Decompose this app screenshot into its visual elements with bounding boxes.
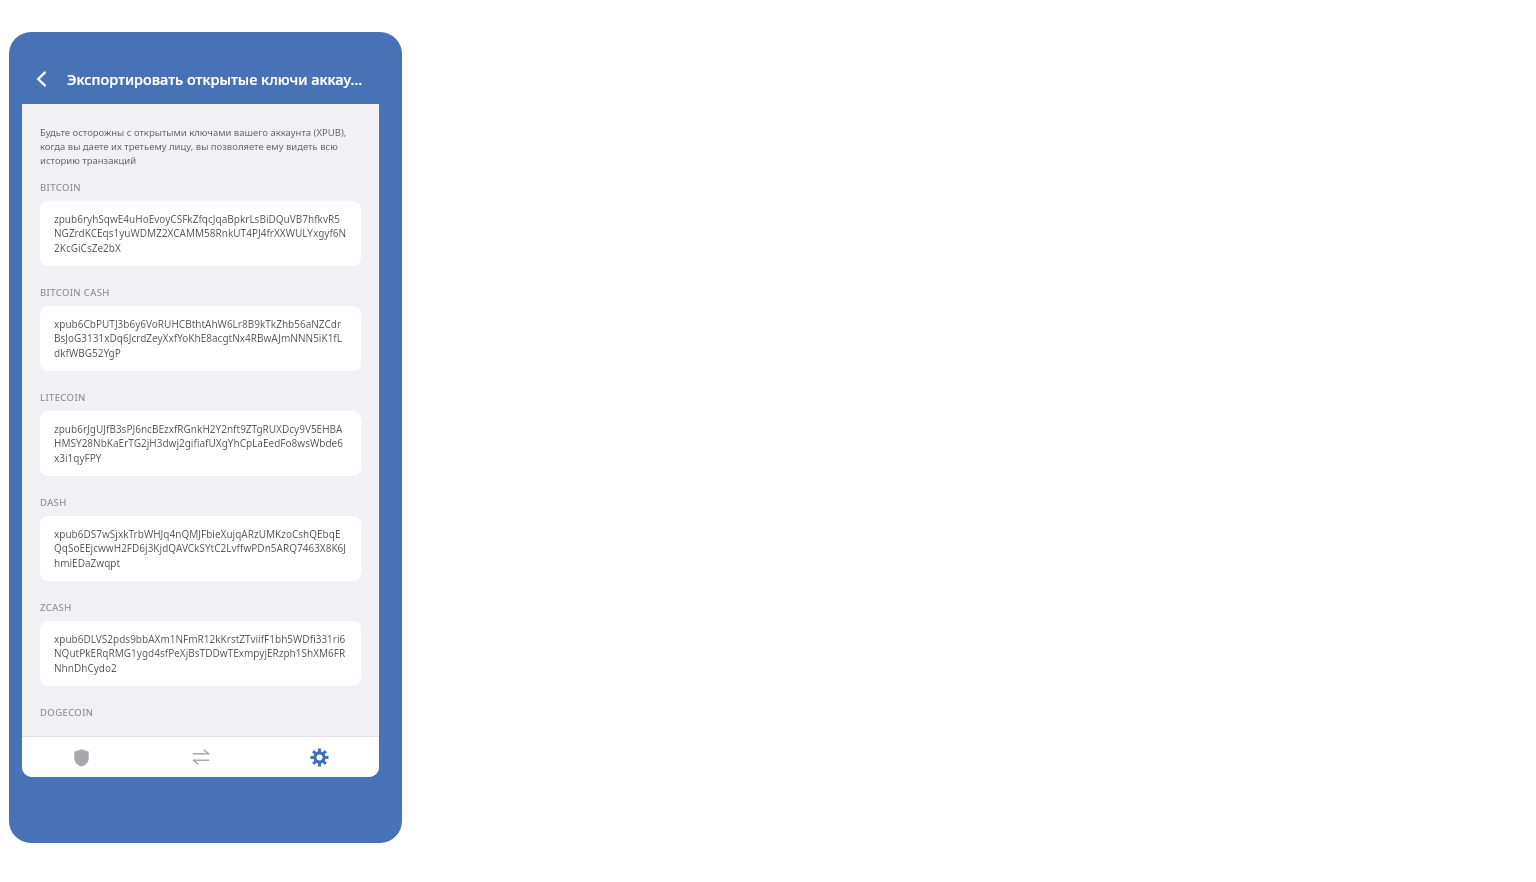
button[interactable]: xpub6DS7wSjxkTrbWHJq4nQMJFbieXujqARzUMKz… bbox=[40, 516, 361, 581]
button[interactable]: Security bbox=[22, 737, 141, 777]
button[interactable]: xpub6CbPUTJ3b6y6VoRUHCBthtAhW6Lr8B9kTkZh… bbox=[40, 306, 361, 371]
staticText: BITCOIN bbox=[40, 181, 81, 194]
staticText: xpub6DS7wSjxkTrbWHJq4nQMJFbieXujqARzUMKz… bbox=[54, 527, 347, 570]
staticText: BITCOIN CASH bbox=[40, 286, 110, 299]
button[interactable]: Settings bbox=[260, 737, 379, 777]
staticText: LITECOIN bbox=[40, 391, 86, 404]
staticText: xpub6DLVS2pds9bbAXm1NFmR12kKrstZTviifF1b… bbox=[54, 632, 347, 675]
staticText: Экспортировать открытые ключи аккау... bbox=[67, 69, 363, 89]
button[interactable]: Transactions bbox=[141, 737, 260, 777]
staticText: DASH bbox=[40, 496, 67, 509]
staticText: xpub6CbPUTJ3b6y6VoRUHCBthtAhW6Lr8B9kTkZh… bbox=[54, 317, 347, 360]
staticText: zpub6rJgUJfB3sPJ6ncBEzxfRGnkH2Y2nft9ZTgR… bbox=[54, 422, 347, 465]
staticText: DOGECOIN bbox=[40, 706, 94, 719]
staticText: Будьте осторожны с открытыми ключами ваш… bbox=[40, 126, 361, 167]
button[interactable]: zpub6ryhSqwE4uHoEvoyCSFkZfqcJqaBpkrLsBiD… bbox=[40, 201, 361, 266]
button[interactable]: zpub6rJgUJfB3sPJ6ncBEzxfRGnkH2Y2nft9ZTgR… bbox=[40, 411, 361, 476]
staticText: zpub6ryhSqwE4uHoEvoyCSFkZfqcJqaBpkrLsBiD… bbox=[54, 212, 347, 255]
staticText: ZCASH bbox=[40, 601, 72, 614]
button[interactable]: Back bbox=[25, 62, 59, 96]
button[interactable]: xpub6DLVS2pds9bbAXm1NFmR12kKrstZTviifF1b… bbox=[40, 621, 361, 686]
